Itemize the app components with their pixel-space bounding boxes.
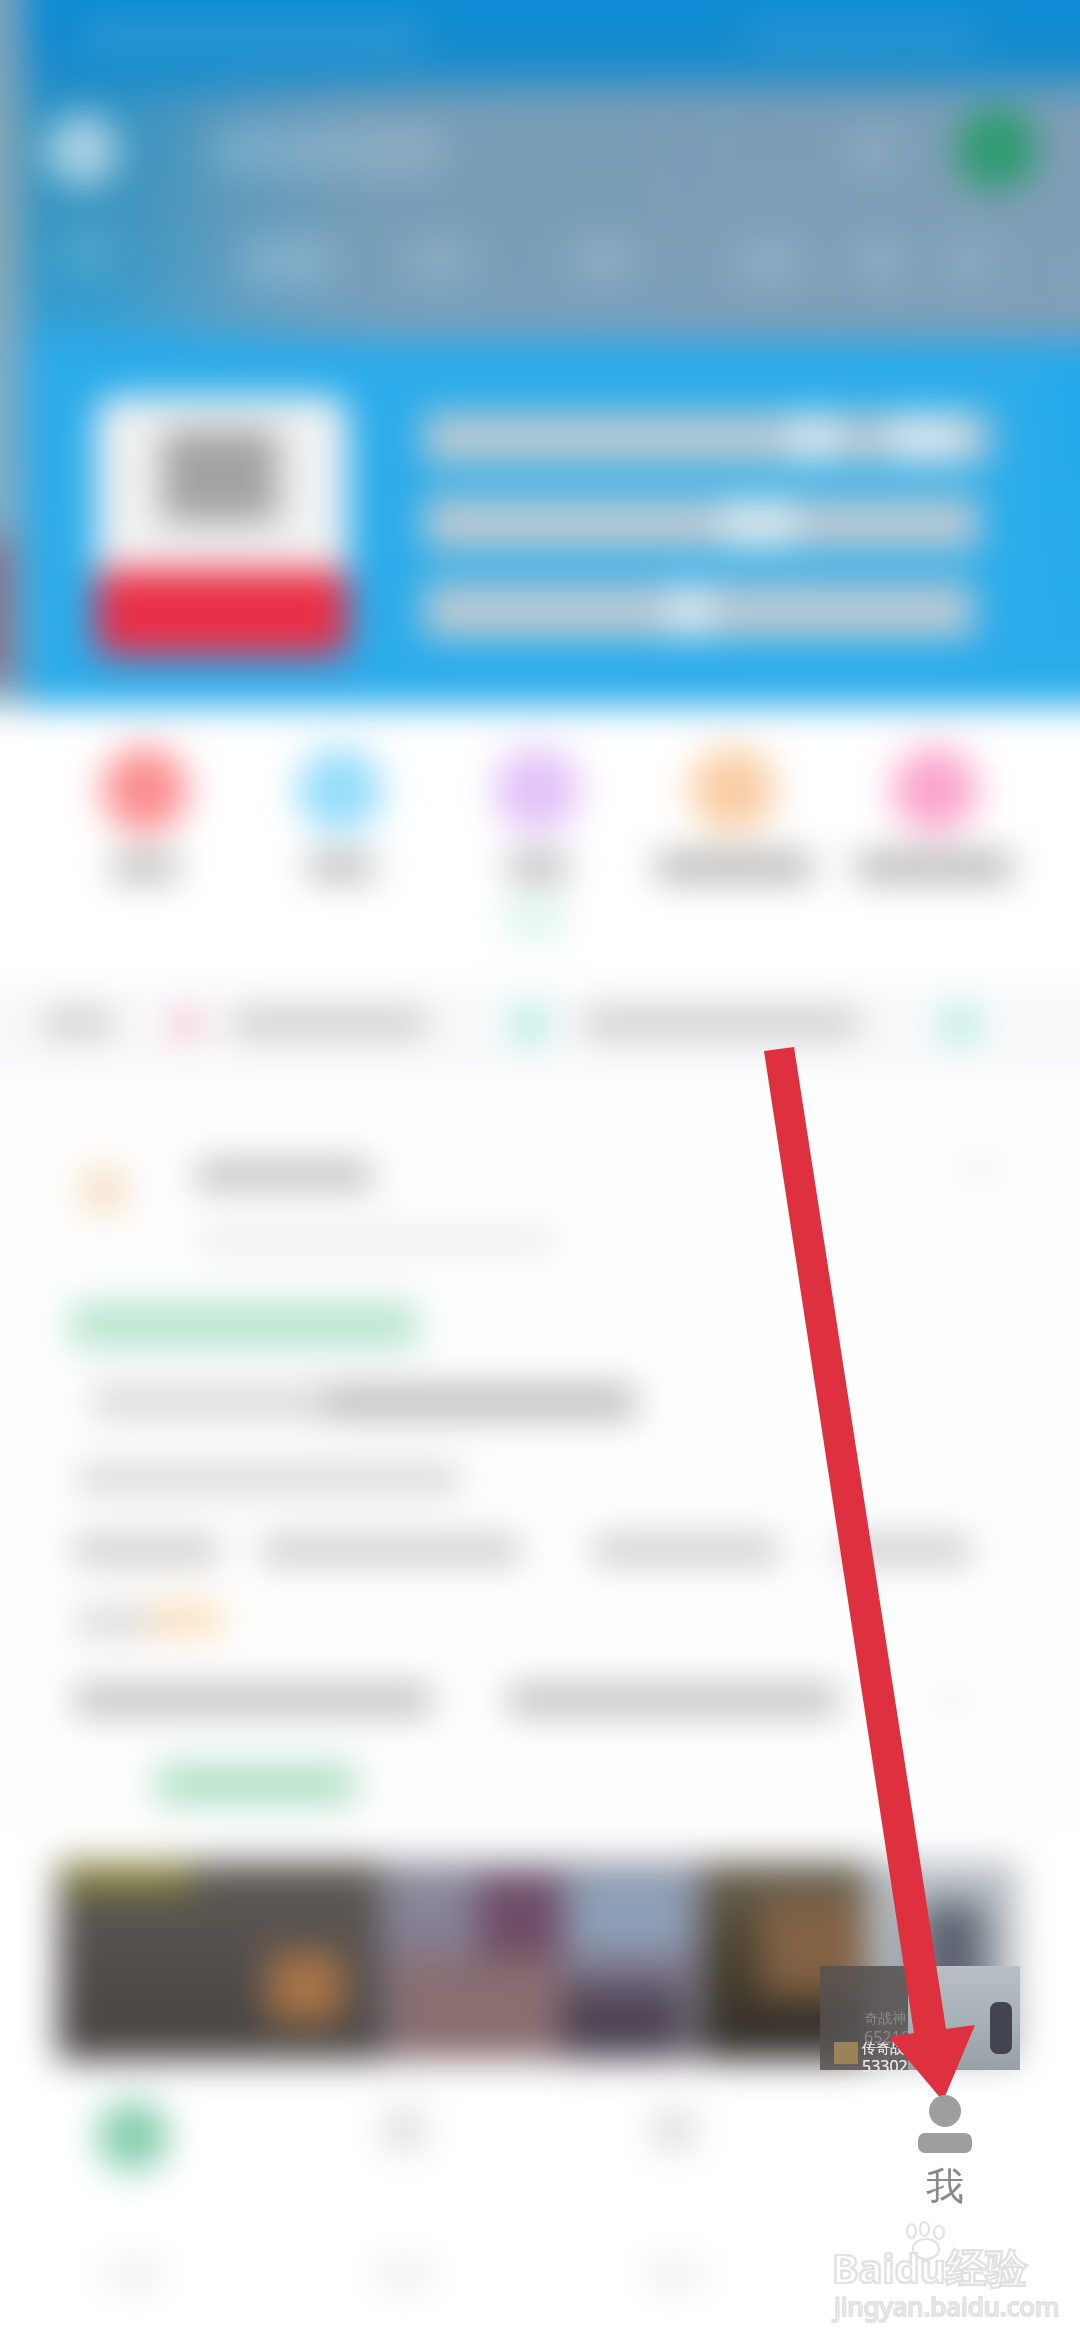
button[interactable]: 视频 — [270, 2082, 540, 2242]
staticText: jingyan.baidu.com — [834, 2288, 1060, 2323]
staticText: 传奇战神 — [862, 2040, 918, 2058]
staticText: 我 — [855, 2162, 1035, 2210]
staticText: 53302 — [862, 2055, 908, 2077]
button[interactable]: 首页 — [0, 2082, 270, 2242]
button[interactable]: 消息 — [540, 2082, 810, 2242]
staticText: 65216 — [864, 2026, 910, 2048]
staticText: Baidu经验 — [832, 2240, 1026, 2295]
staticText: 奇战神 — [864, 2010, 906, 2028]
button[interactable]: 我 — [855, 2082, 1035, 2242]
